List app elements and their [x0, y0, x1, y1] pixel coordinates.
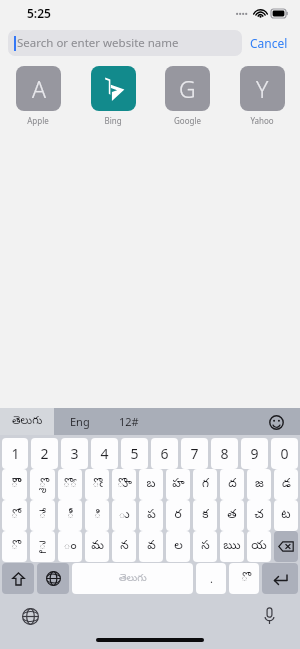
button[interactable]: Dictate: [258, 605, 280, 627]
button[interactable]: చ: [247, 500, 271, 531]
staticText: బ: [146, 477, 156, 493]
button[interactable]: ొౌ: [2, 469, 27, 500]
staticText: తెలుగు: [119, 572, 147, 586]
button[interactable]: 4: [91, 438, 118, 469]
staticText: ీ: [67, 508, 74, 524]
button[interactable]: 8: [211, 438, 238, 469]
staticText: 2: [40, 444, 49, 463]
button[interactable]: 1: [2, 438, 28, 469]
staticText: ొ: [11, 539, 18, 555]
button[interactable]: 7: [181, 438, 208, 469]
button[interactable]: న: [112, 531, 136, 562]
button[interactable]: ొ: [2, 531, 27, 562]
button[interactable]: Emoji: [266, 412, 286, 432]
button[interactable]: 9: [241, 438, 268, 469]
button[interactable]: డ: [274, 469, 298, 500]
staticText: 6: [160, 444, 169, 463]
button[interactable]: ీ: [58, 500, 82, 531]
button[interactable]: తెలుగు: [0, 408, 54, 435]
button[interactable]: ట: [274, 500, 298, 531]
button[interactable]: ప: [139, 500, 163, 531]
staticText: A: [32, 73, 46, 104]
staticText: ఋ: [223, 539, 241, 555]
button[interactable]: 0: [271, 438, 298, 469]
button[interactable]: ొౕ: [58, 469, 82, 500]
button[interactable]: ొ: [229, 563, 259, 594]
staticText: Cancel: [250, 35, 288, 51]
button[interactable]: గ: [193, 469, 217, 500]
staticText: Eng: [70, 414, 90, 429]
button[interactable]: య: [247, 531, 271, 562]
button[interactable]: Eng: [54, 408, 106, 435]
button[interactable]: ే: [30, 500, 55, 531]
button[interactable]: ఋ: [220, 531, 244, 562]
staticText: ి: [94, 508, 101, 524]
staticText: చ: [254, 508, 264, 524]
button[interactable]: Backspace: [274, 531, 298, 562]
button[interactable]: Cancel: [242, 35, 292, 51]
staticText: ం: [63, 539, 77, 555]
staticText: ో: [11, 508, 18, 524]
staticText: ొఁ: [92, 477, 103, 493]
button[interactable]: త: [220, 500, 244, 531]
button[interactable]: Bing: [89, 66, 137, 126]
button[interactable]: మ: [85, 531, 109, 562]
staticText: 3: [70, 444, 79, 463]
staticText: ొూ: [117, 477, 132, 493]
button[interactable]: ొౢ: [30, 469, 55, 500]
staticText: ప: [147, 508, 156, 524]
button[interactable]: ై: [30, 531, 55, 562]
button[interactable]: Switch keyboard: [37, 563, 69, 594]
staticText: 12#: [119, 414, 139, 429]
staticText: Bing: [104, 115, 122, 126]
button[interactable]: G: [163, 66, 211, 126]
button[interactable]: Keyboard language: [19, 605, 41, 627]
button[interactable]: 6: [151, 438, 178, 469]
staticText: ొౢ: [39, 477, 46, 493]
button[interactable]: ర: [166, 500, 190, 531]
staticText: ర: [174, 508, 182, 524]
button[interactable]: .: [196, 563, 226, 594]
button[interactable]: హ: [166, 469, 190, 500]
staticText: 5:25: [27, 5, 51, 21]
button[interactable]: ం: [58, 531, 82, 562]
staticText: 0: [280, 444, 289, 463]
staticText: క: [202, 508, 209, 524]
button[interactable]: A: [14, 66, 62, 126]
button[interactable]: ద: [220, 469, 244, 500]
button[interactable]: ొఁ: [85, 469, 109, 500]
button[interactable]: Return: [262, 563, 298, 594]
staticText: న: [120, 539, 129, 555]
button[interactable]: బ: [139, 469, 163, 500]
button[interactable]: 3: [61, 438, 88, 469]
staticText: 8: [220, 444, 229, 463]
button[interactable]: Y: [238, 66, 286, 126]
staticText: ు: [118, 508, 130, 524]
button[interactable]: 5: [121, 438, 148, 469]
button[interactable]: ల: [166, 531, 190, 562]
button[interactable]: ొూ: [112, 469, 136, 500]
staticText: Search or enter website name: [17, 35, 179, 51]
button[interactable]: Shift: [2, 563, 34, 594]
button[interactable]: స: [193, 531, 217, 562]
button[interactable]: క: [193, 500, 217, 531]
button[interactable]: ి: [85, 500, 109, 531]
button[interactable]: 2: [31, 438, 58, 469]
staticText: ై: [39, 539, 46, 555]
staticText: Apple: [27, 115, 49, 126]
button[interactable]: జ: [247, 469, 271, 500]
staticText: 7: [190, 444, 199, 463]
staticText: వ: [147, 539, 156, 555]
button[interactable]: Search or enter website name: [8, 30, 242, 56]
staticText: Yahoo: [250, 115, 274, 126]
button[interactable]: ో: [2, 500, 27, 531]
staticText: స: [201, 539, 210, 555]
staticText: 4: [100, 444, 109, 463]
staticText: ొౕ: [63, 477, 77, 493]
button[interactable]: వ: [139, 531, 163, 562]
button[interactable]: 12#: [106, 408, 152, 435]
staticText: .: [210, 571, 213, 586]
button[interactable]: తెలుగు: [72, 563, 193, 594]
button[interactable]: ు: [112, 500, 136, 531]
staticText: G: [179, 73, 196, 104]
